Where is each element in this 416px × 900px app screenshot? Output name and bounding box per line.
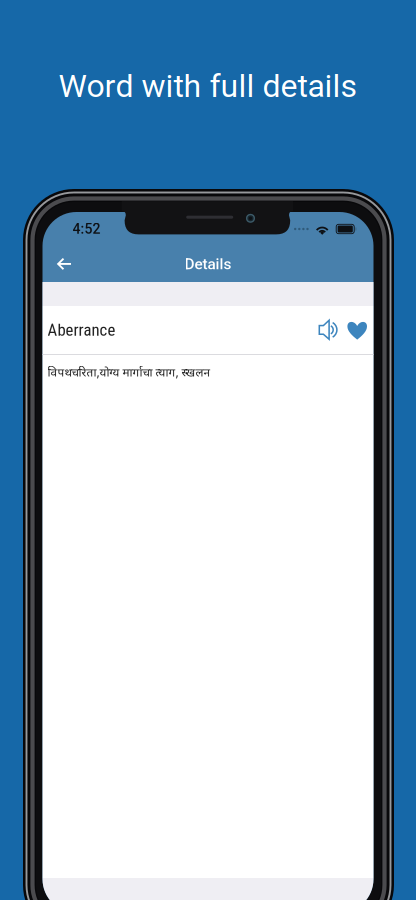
staticText: Word with full details: [58, 67, 357, 105]
staticText: Aberrance: [47, 320, 115, 340]
staticText: Details: [184, 255, 231, 273]
button[interactable]: Back: [45, 246, 82, 282]
staticText: 4:52: [72, 221, 100, 237]
button[interactable]: Pronounce: [316, 313, 337, 347]
staticText: विपथचरिता,योग्य मार्गाचा त्याग, स्खलन: [47, 366, 210, 381]
button[interactable]: Add to favourites: [347, 313, 367, 347]
